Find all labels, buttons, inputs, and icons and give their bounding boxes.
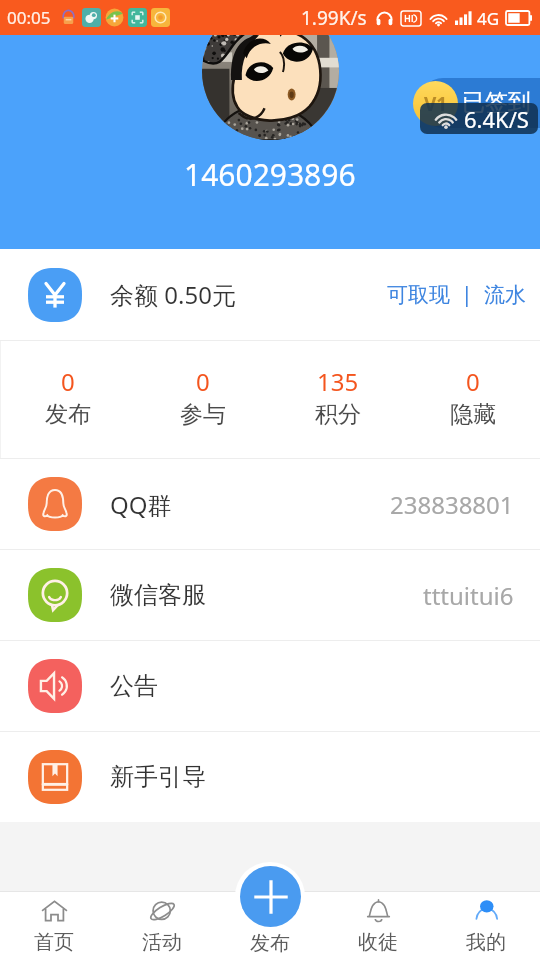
staticText: 0	[196, 365, 210, 398]
staticText: 首页	[34, 930, 74, 955]
button[interactable]: 135	[270, 341, 405, 458]
staticText: 收徒	[358, 930, 398, 955]
staticText: 新手引导	[110, 762, 206, 792]
button[interactable]: 0	[1, 341, 135, 458]
button[interactable]: 收徒	[324, 891, 432, 960]
button[interactable]: 已签到	[418, 78, 540, 128]
button[interactable]: Avatar	[202, 3, 339, 140]
button[interactable]: 活动	[108, 891, 216, 960]
button[interactable]: 我的	[432, 891, 540, 960]
staticText: 6.4K/S	[464, 104, 529, 134]
other: Network speed	[420, 103, 538, 134]
staticText: QQ群	[110, 488, 172, 521]
staticText: 0	[61, 365, 75, 398]
staticText: 余额 0.50元	[110, 278, 236, 311]
staticText: 1460293896	[184, 154, 356, 195]
button[interactable]: QQ群	[0, 459, 540, 549]
staticText: V1	[424, 91, 448, 117]
staticText: tttuitui6	[423, 579, 514, 612]
staticText: 1.99K/s	[301, 5, 367, 31]
staticText: 我的	[466, 930, 506, 955]
button[interactable]: 首页	[0, 891, 108, 960]
button[interactable]: 新手引导	[0, 732, 540, 822]
staticText: 积分	[315, 400, 361, 429]
staticText: 参与	[180, 400, 226, 429]
button[interactable]: 流水	[484, 274, 526, 316]
staticText: 发布	[250, 931, 290, 956]
button[interactable]: 公告	[0, 641, 540, 731]
staticText: 公告	[110, 671, 158, 701]
staticText: 00:05	[7, 6, 51, 29]
button[interactable]: 发布	[216, 891, 324, 960]
staticText: 0	[466, 365, 480, 398]
button[interactable]: 0	[405, 341, 540, 458]
staticText: 隐藏	[450, 400, 496, 429]
staticText: 238838801	[390, 488, 514, 521]
staticText: 微信客服	[110, 580, 206, 610]
staticText: |	[450, 280, 484, 309]
staticText: 4G	[477, 7, 500, 30]
staticText: 活动	[142, 930, 182, 955]
button[interactable]: 发布	[240, 866, 301, 927]
staticText: 发布	[45, 400, 91, 429]
staticText: 135	[317, 365, 359, 398]
staticText: 已签到	[462, 88, 531, 117]
button[interactable]: 可取现	[387, 274, 450, 316]
button[interactable]: 0	[135, 341, 270, 458]
button[interactable]: 余额 0.50元	[0, 249, 540, 340]
button[interactable]: 微信客服	[0, 550, 540, 640]
